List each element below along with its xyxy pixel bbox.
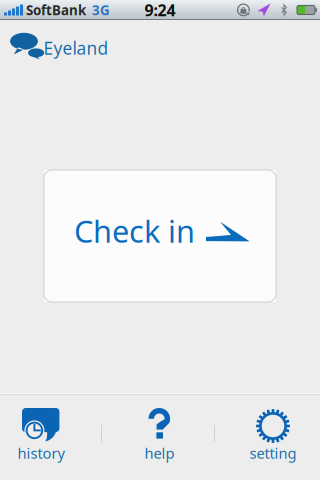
staticText: help — [144, 443, 174, 463]
button[interactable]: setting — [214, 393, 320, 480]
button[interactable]: Check in — [44, 170, 276, 302]
staticText: Eyeland — [43, 37, 108, 60]
staticText: 9:24 — [144, 0, 175, 21]
staticText: 3G — [92, 1, 110, 19]
staticText: Check in — [74, 210, 195, 251]
staticText: SoftBank — [26, 1, 86, 19]
staticText: setting — [249, 443, 296, 463]
button[interactable]: help — [101, 393, 214, 480]
staticText: history — [17, 443, 64, 463]
button[interactable]: history — [0, 393, 101, 480]
